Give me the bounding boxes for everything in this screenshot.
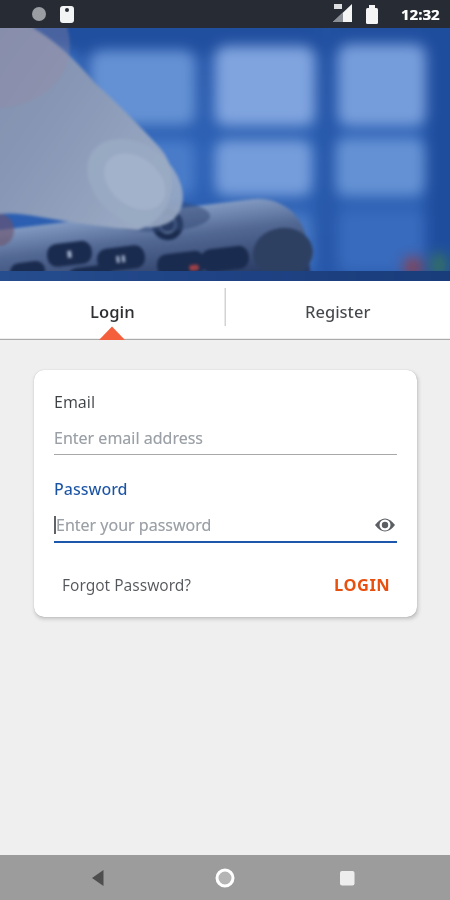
staticText: LOGIN	[334, 573, 391, 595]
staticText: Enter your password	[56, 514, 212, 536]
staticText: Enter email address	[54, 427, 204, 449]
button[interactable]: Enter your password	[54, 513, 397, 543]
staticText: 12:32	[401, 4, 440, 24]
staticText: Email	[54, 391, 96, 413]
button[interactable]: Forgot Password?	[54, 574, 192, 595]
staticText: Register	[305, 300, 371, 322]
button[interactable]: Enter email address	[54, 427, 397, 455]
button[interactable]: LOGIN	[334, 573, 397, 595]
button[interactable]	[203, 856, 247, 900]
staticText: Forgot Password?	[62, 574, 192, 595]
staticText: Password	[54, 478, 128, 500]
button[interactable]	[373, 513, 397, 537]
button[interactable]	[77, 856, 121, 900]
button[interactable]: Register	[225, 281, 450, 340]
button[interactable]	[325, 856, 369, 900]
button[interactable]: Login	[0, 281, 225, 340]
staticText: Login	[90, 300, 135, 322]
